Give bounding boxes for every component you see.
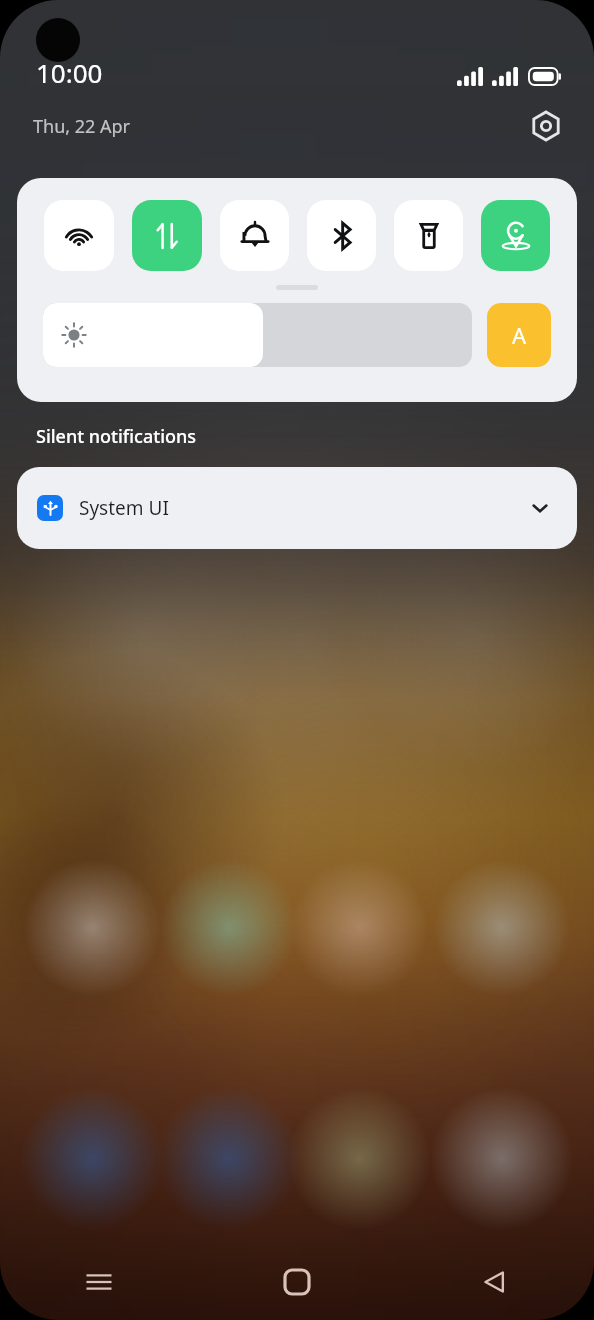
button[interactable]: Mobile data (132, 200, 202, 271)
button[interactable]: Bluetooth (307, 200, 376, 271)
staticText: A (512, 320, 527, 350)
button[interactable]: Brightness (43, 303, 472, 367)
button[interactable]: Expand (523, 491, 557, 525)
button[interactable]: A (487, 303, 551, 367)
button[interactable]: Flashlight (394, 200, 463, 271)
staticText: Thu, 22 Apr (33, 114, 131, 139)
button[interactable]: Settings (526, 106, 566, 146)
button[interactable]: Ring mode (220, 200, 289, 271)
staticText: Silent notifications (36, 424, 197, 449)
button[interactable]: Recent apps (0, 1244, 198, 1320)
button[interactable]: Location (481, 200, 550, 271)
staticText: 10:00 (36, 55, 103, 90)
button[interactable]: System UI (17, 467, 577, 549)
button[interactable]: Home (198, 1244, 396, 1320)
button[interactable]: Wi-Fi (44, 200, 114, 271)
staticText: System UI (79, 495, 169, 521)
button[interactable]: Back (396, 1244, 594, 1320)
